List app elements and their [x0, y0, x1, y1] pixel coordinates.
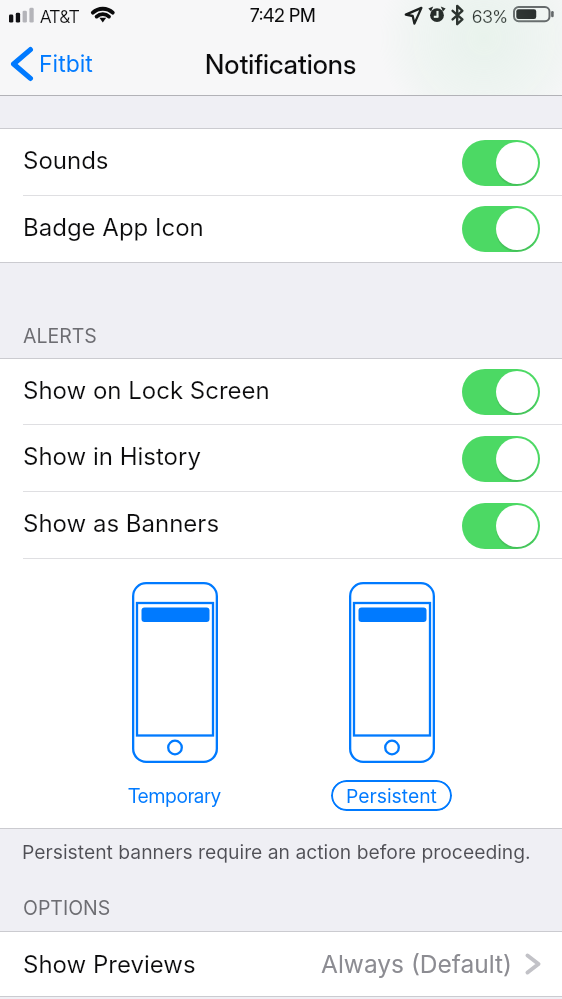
staticText: Sounds — [23, 146, 109, 175]
staticText: 7:42 PM — [250, 5, 316, 27]
staticText: Persistent banners require an action bef… — [22, 840, 531, 863]
staticText: Notifications — [205, 48, 357, 81]
button[interactable]: Toggle — [462, 140, 540, 186]
staticText: Badge App Icon — [23, 213, 204, 242]
button[interactable]: Toggle — [462, 436, 540, 482]
button[interactable]: Temporary — [94, 582, 254, 808]
staticText: Show on Lock Screen — [23, 376, 270, 405]
button[interactable]: Toggle — [462, 503, 540, 549]
staticText: Persistent — [346, 784, 437, 807]
staticText: OPTIONS — [23, 896, 111, 920]
button[interactable]: Show as Banners — [0, 492, 562, 559]
button[interactable]: Persistent — [311, 582, 471, 811]
staticText: Show in History — [23, 442, 201, 471]
other: Back to Fitbit — [11, 47, 33, 81]
button[interactable]: Toggle — [462, 206, 540, 252]
staticText: ALERTS — [23, 324, 97, 348]
staticText: Temporary — [128, 784, 221, 808]
button[interactable]: Show in History — [0, 425, 562, 492]
button[interactable]: Badge App Icon — [0, 196, 562, 262]
staticText: Always (Default) — [321, 949, 512, 979]
staticText: Show Previews — [23, 950, 196, 979]
button[interactable]: Back to Fitbit — [11, 32, 93, 96]
staticText: AT&T — [40, 6, 80, 27]
staticText: Show as Banners — [23, 509, 220, 538]
button[interactable]: Sounds — [0, 129, 562, 196]
staticText: 63% — [472, 6, 508, 27]
button[interactable]: Toggle — [462, 369, 540, 415]
button[interactable]: Show Previews — [0, 932, 562, 996]
staticText: Fitbit — [39, 50, 93, 78]
button[interactable]: Show on Lock Screen — [0, 359, 562, 425]
